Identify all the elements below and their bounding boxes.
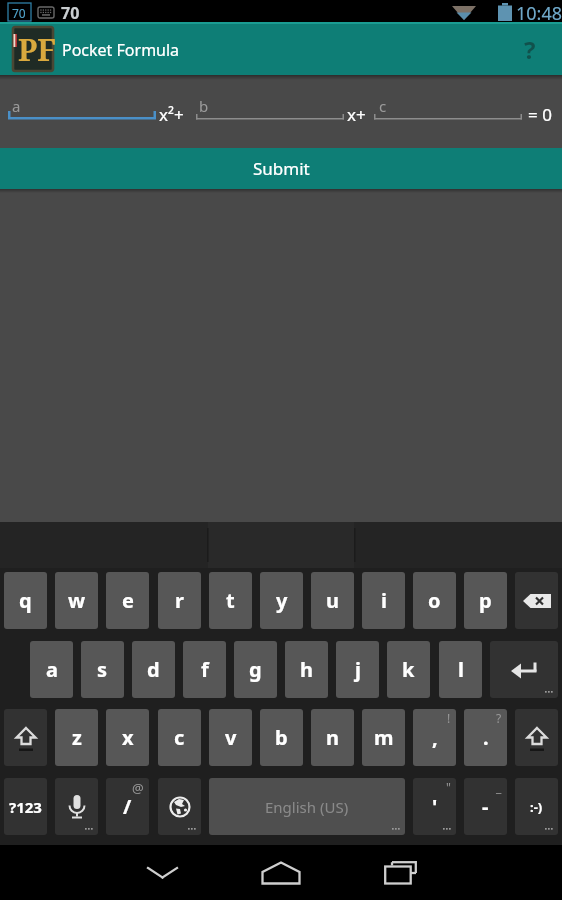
button[interactable] (490, 641, 558, 698)
button[interactable]: g (234, 641, 277, 698)
button[interactable]: PF (13, 27, 53, 71)
staticText: ' (432, 793, 438, 820)
staticText: t (226, 587, 235, 614)
staticText: _ (496, 779, 502, 795)
button[interactable]: d (132, 641, 175, 698)
button[interactable]: ?123 (4, 778, 47, 835)
staticText: PF (18, 29, 56, 70)
button[interactable]: q (4, 572, 47, 629)
staticText: w (68, 587, 86, 614)
staticText: c (174, 724, 185, 751)
staticText: English (US) (265, 797, 349, 817)
staticText: i (381, 587, 387, 614)
staticText: x (122, 724, 134, 751)
button[interactable] (370, 845, 430, 900)
staticText: b (275, 724, 288, 751)
staticText: . (483, 724, 489, 751)
button[interactable]: ' (413, 778, 456, 835)
staticText: s (97, 656, 108, 683)
button[interactable] (515, 572, 558, 629)
button[interactable]: o (413, 572, 456, 629)
staticText: - (482, 793, 489, 820)
staticText: r (175, 587, 184, 614)
button[interactable]: z (55, 709, 98, 766)
staticText: u (326, 587, 339, 614)
staticText: = 0 (528, 103, 552, 126)
staticText: c (379, 96, 387, 116)
staticText: Pocket Formula (62, 39, 180, 61)
button[interactable] (132, 845, 192, 900)
button[interactable]: v (209, 709, 252, 766)
button[interactable]: n (311, 709, 354, 766)
staticText: ?123 (9, 797, 42, 817)
staticText: a (12, 96, 21, 116)
staticText: , (432, 724, 438, 751)
staticText: @ (132, 779, 144, 797)
staticText: j (355, 656, 361, 683)
staticText: " (446, 779, 451, 795)
staticText: f (201, 656, 209, 683)
button[interactable]: p (464, 572, 507, 629)
staticText: Submit (253, 157, 310, 180)
button[interactable]: e (106, 572, 149, 629)
button[interactable]: m (362, 709, 405, 766)
button[interactable] (4, 709, 47, 766)
staticText: e (122, 587, 134, 614)
staticText: 10:48 (516, 1, 562, 25)
button[interactable]: s (81, 641, 124, 698)
staticText: x²+ (159, 103, 184, 126)
button[interactable] (251, 845, 311, 900)
button[interactable]: :-) (515, 778, 558, 835)
button[interactable] (158, 778, 201, 835)
button[interactable]: l (439, 641, 482, 698)
staticText: :-) (530, 798, 543, 816)
button[interactable]: a (30, 641, 73, 698)
button[interactable]: b (260, 709, 303, 766)
staticText: m (374, 724, 394, 751)
staticText: q (19, 587, 32, 614)
staticText: n (326, 724, 339, 751)
staticText: a (46, 656, 58, 683)
staticText: 70 (12, 5, 26, 21)
button[interactable]: - (464, 778, 507, 835)
staticText: k (402, 656, 415, 683)
staticText: v (225, 724, 237, 751)
button[interactable]: f (183, 641, 226, 698)
staticText: b (199, 96, 209, 116)
button[interactable]: Submit (0, 148, 562, 189)
button[interactable]: / (106, 778, 149, 835)
button[interactable]: i (362, 572, 405, 629)
button[interactable]: w (55, 572, 98, 629)
button[interactable]: t (209, 572, 252, 629)
staticText: l (458, 656, 464, 683)
button[interactable] (196, 85, 344, 121)
staticText: g (249, 656, 262, 683)
staticText: ! (447, 710, 451, 726)
staticText: y (276, 587, 288, 614)
button[interactable]: ? (505, 24, 555, 75)
button[interactable] (8, 85, 156, 121)
staticText: 70 (61, 2, 80, 24)
button[interactable]: k (387, 641, 430, 698)
button[interactable]: u (311, 572, 354, 629)
button[interactable]: x (106, 709, 149, 766)
button[interactable]: j (336, 641, 379, 698)
staticText: x+ (347, 103, 366, 126)
button[interactable] (515, 709, 558, 766)
button[interactable]: c (158, 709, 201, 766)
button[interactable]: r (158, 572, 201, 629)
staticText: ? (496, 710, 502, 726)
staticText: d (147, 656, 160, 683)
button[interactable] (55, 778, 98, 835)
button[interactable]: y (260, 572, 303, 629)
button[interactable]: English (US) (209, 778, 405, 835)
button[interactable]: . (464, 709, 507, 766)
staticText: ? (524, 33, 536, 66)
staticText: o (428, 587, 441, 614)
button[interactable]: h (285, 641, 328, 698)
button[interactable]: , (413, 709, 456, 766)
staticText: h (300, 656, 313, 683)
staticText: z (72, 724, 82, 751)
staticText: / (123, 793, 132, 820)
button[interactable] (374, 85, 522, 121)
